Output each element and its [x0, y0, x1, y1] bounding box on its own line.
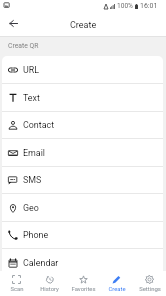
button[interactable]: Phone [2, 221, 163, 249]
staticText: Contact [23, 120, 55, 130]
staticText: Geo [23, 203, 39, 213]
staticText: Text [23, 93, 40, 103]
button[interactable]: Favorites [67, 271, 100, 296]
staticText: History [40, 286, 59, 293]
staticText: Scan [10, 286, 24, 293]
staticText: Settings [139, 286, 161, 293]
button[interactable]: URL [2, 56, 163, 84]
button[interactable]: Calendar [2, 249, 163, 277]
staticText: Create [108, 286, 126, 293]
button[interactable]: Scan [0, 271, 33, 296]
staticText: Email [23, 148, 46, 158]
staticText: Create QR [8, 42, 39, 50]
staticText: Phone [23, 230, 49, 240]
button[interactable]: Create [100, 271, 133, 296]
staticText: URL [23, 65, 40, 75]
button[interactable]: Contact [2, 111, 163, 139]
staticText: Favorites [71, 286, 96, 293]
button[interactable]: SMS [2, 166, 163, 194]
staticText: 16:01 [140, 2, 158, 10]
staticText: Create [70, 20, 97, 31]
button[interactable]: Geo [2, 194, 163, 222]
button[interactable]: Settings [133, 271, 166, 296]
staticText: SMS [23, 175, 42, 185]
button[interactable]: Text [2, 84, 163, 112]
button[interactable]: Back [5, 15, 21, 31]
staticText: 100% [117, 2, 133, 10]
button[interactable]: History [33, 271, 66, 296]
button[interactable]: Email [2, 139, 163, 167]
staticText: Calendar [23, 258, 59, 268]
